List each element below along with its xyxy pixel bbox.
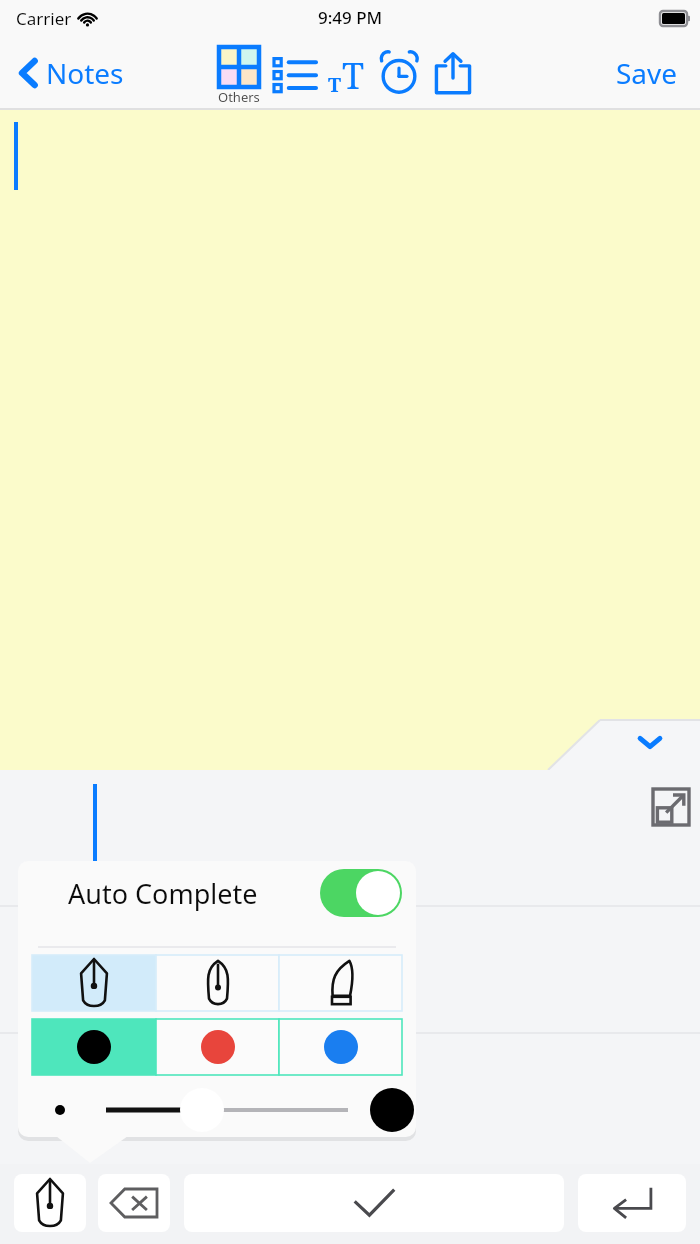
staticText: 9:49 PM bbox=[318, 6, 383, 29]
button[interactable]: Collapse bbox=[628, 720, 672, 764]
staticText: T bbox=[328, 71, 342, 98]
button[interactable]: Expand bbox=[648, 784, 694, 830]
staticText: Auto Complete bbox=[68, 875, 258, 912]
button[interactable] bbox=[279, 955, 402, 1011]
button[interactable]: Auto Complete bbox=[18, 861, 416, 925]
button[interactable]: Save bbox=[608, 48, 686, 98]
button[interactable]: Confirm bbox=[184, 1174, 564, 1232]
button[interactable]: Notes bbox=[14, 48, 130, 98]
button[interactable]: List bbox=[271, 43, 319, 103]
button[interactable]: Text size bbox=[321, 43, 371, 103]
button[interactable]: Others palette bbox=[213, 43, 265, 103]
staticText: Save bbox=[616, 54, 678, 92]
other: Auto Complete on bbox=[320, 869, 402, 917]
button[interactable]: Share bbox=[429, 43, 477, 103]
button[interactable] bbox=[279, 1019, 402, 1075]
staticText: Notes bbox=[46, 54, 124, 92]
staticText: Carrier bbox=[16, 7, 72, 30]
button[interactable]: Pen bbox=[14, 1174, 86, 1232]
button[interactable] bbox=[156, 1019, 279, 1075]
button[interactable]: Return bbox=[578, 1174, 686, 1232]
button[interactable] bbox=[156, 955, 279, 1011]
staticText: T bbox=[342, 51, 365, 100]
button[interactable] bbox=[32, 955, 156, 1011]
button[interactable]: Backspace bbox=[98, 1174, 170, 1232]
button[interactable]: Reminder bbox=[373, 43, 425, 103]
staticText: Others bbox=[218, 88, 260, 103]
button[interactable] bbox=[32, 1019, 156, 1075]
